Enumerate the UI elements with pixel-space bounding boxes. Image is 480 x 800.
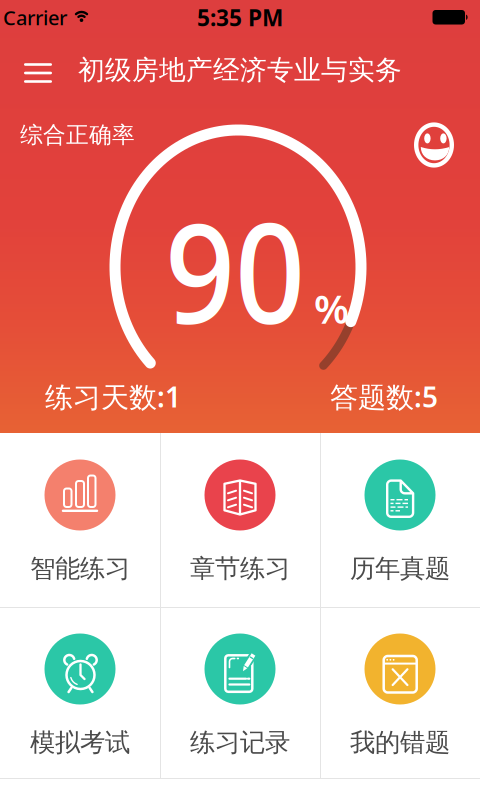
staticText: Carrier <box>3 4 67 31</box>
button[interactable]: 智能练习 <box>0 433 160 607</box>
staticText: 练习记录 <box>190 727 290 758</box>
staticText: 5:35 PM <box>197 2 283 32</box>
staticText: 答题数:5 <box>330 378 438 415</box>
staticText: 历年真题 <box>350 553 450 584</box>
button[interactable]: 章节练习 <box>160 433 320 607</box>
button[interactable]: 模拟考试 <box>0 607 160 779</box>
staticText: % <box>314 282 349 335</box>
staticText: 90 <box>156 178 314 362</box>
button[interactable]: 历年真题 <box>320 433 480 607</box>
staticText: 初级房地产经济专业与实务 <box>78 54 402 86</box>
staticText: 智能练习 <box>30 553 130 584</box>
staticText: 模拟考试 <box>30 727 130 758</box>
staticText: 练习天数:1 <box>45 378 181 415</box>
staticText: 我的错题 <box>350 727 450 758</box>
button[interactable]: Mood <box>412 121 456 169</box>
staticText: 综合正确率 <box>20 121 135 149</box>
staticText: 章节练习 <box>190 553 290 584</box>
button[interactable]: Menu <box>0 45 52 95</box>
button[interactable]: 我的错题 <box>320 607 480 779</box>
button[interactable]: 练习记录 <box>160 607 320 779</box>
